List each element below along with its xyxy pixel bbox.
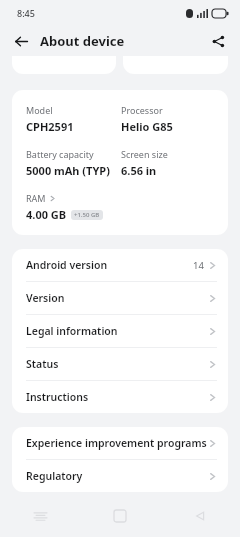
staticText: 5000 mAh (TYP) [26,163,110,178]
staticText: 14 [193,259,204,272]
staticText: Android version [26,258,193,272]
staticText: About device [40,32,125,50]
staticText: Battery capacity [26,148,94,160]
staticText: 8:45 [17,7,35,19]
staticText: Screen size [121,148,168,160]
button[interactable]: Android version [12,249,228,281]
button[interactable]: Legal information [12,315,228,347]
staticText: CPH2591 [26,119,74,134]
button[interactable]: Regulatory [12,460,228,492]
staticText: 6.56 in [121,163,157,178]
staticText: Helio G85 [121,119,173,134]
staticText: Experience improvement programs [26,436,208,450]
button[interactable]: Version [12,282,228,314]
button[interactable]: Status [12,348,228,380]
staticText: 4.00 GB [26,207,67,222]
staticText: RAM [26,192,46,204]
button[interactable]: Back [8,28,34,54]
button[interactable]: Experience improvement programs [12,427,228,459]
button[interactable]: RAM [26,192,216,222]
staticText: Regulatory [26,469,208,483]
staticText: Version [26,291,208,305]
staticText: Instructions [26,390,208,404]
button[interactable]: Instructions [12,381,228,413]
staticText: Processor [121,104,163,116]
staticText: Status [26,357,208,371]
staticText: Model [26,104,53,116]
staticText: Legal information [26,324,208,338]
staticText: +1.50 GB [74,211,100,219]
button[interactable]: Share [205,28,231,54]
